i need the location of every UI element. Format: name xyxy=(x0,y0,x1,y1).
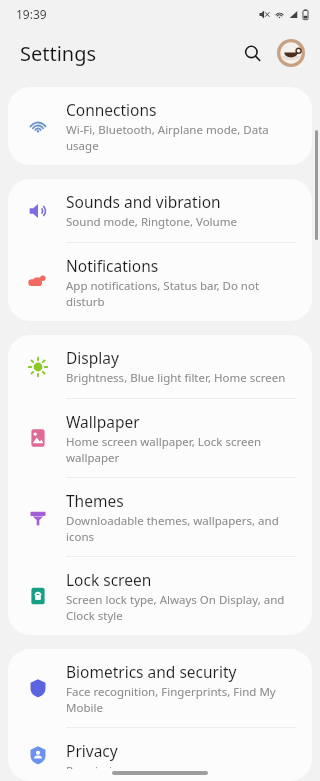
staticText: Privacy xyxy=(66,740,118,761)
staticText: Settings xyxy=(20,40,97,67)
button[interactable]: Notifications xyxy=(8,243,312,321)
staticText: Wi-Fi, Bluetooth, Airplane mode, Data us… xyxy=(66,122,296,153)
staticText: Downloadable themes, wallpapers, and ico… xyxy=(66,513,296,544)
staticText: Themes xyxy=(66,490,124,511)
staticText: Face recognition, Fingerprints, Find My … xyxy=(66,684,296,715)
button[interactable]: Search xyxy=(232,33,272,73)
button[interactable]: Privacy xyxy=(8,728,312,781)
staticText: Connections xyxy=(66,99,157,120)
staticText: 19:39 xyxy=(16,6,47,22)
staticText: Biometrics and security xyxy=(66,661,237,682)
staticText: Screen lock type, Always On Display, and… xyxy=(66,592,296,623)
staticText: Home screen wallpaper, Lock screen wallp… xyxy=(66,434,296,465)
button[interactable]: Wallpaper xyxy=(8,399,312,477)
staticText: Notifications xyxy=(66,255,159,276)
staticText: Sound mode, Ringtone, Volume xyxy=(66,214,237,230)
staticText: App notifications, Status bar, Do not di… xyxy=(66,278,296,309)
staticText: Display xyxy=(66,347,119,368)
staticText: Permission manager xyxy=(66,763,179,769)
staticText: Wallpaper xyxy=(66,411,140,432)
button[interactable]: Display xyxy=(8,335,312,398)
staticText: Sounds and vibration xyxy=(66,191,221,212)
button[interactable]: Account xyxy=(272,34,310,72)
button[interactable]: Biometrics and security xyxy=(8,649,312,727)
staticText: Lock screen xyxy=(66,569,152,590)
button[interactable]: Connections xyxy=(8,87,312,165)
button[interactable]: Themes xyxy=(8,478,312,556)
button[interactable]: Sounds and vibration xyxy=(8,179,312,242)
staticText: Brightness, Blue light filter, Home scre… xyxy=(66,370,286,386)
button[interactable]: Lock screen xyxy=(8,557,312,635)
